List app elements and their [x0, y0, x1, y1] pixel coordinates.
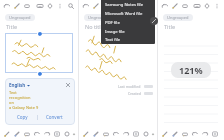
- button[interactable]: Select: [53, 130, 61, 138]
- button[interactable]: Tag: [125, 2, 133, 10]
- button[interactable]: Undo: [191, 130, 199, 138]
- button[interactable]: PDF file: [101, 18, 155, 27]
- button[interactable]: Scroll handle: [150, 17, 158, 25]
- button[interactable]: Ungrouped: [5, 14, 35, 21]
- staticText: Ungrouped: [167, 15, 189, 20]
- button[interactable]: Pen: [92, 2, 100, 10]
- staticText: Convert: [46, 114, 63, 120]
- staticText: Text file: [105, 37, 121, 43]
- button[interactable]: More options: [135, 2, 143, 10]
- staticText: No title: [85, 23, 104, 30]
- button[interactable]: Eraser: [23, 2, 31, 10]
- button[interactable]: Tag: [203, 2, 211, 10]
- button[interactable]: Undo: [3, 2, 11, 10]
- button[interactable]: Color: [73, 130, 75, 138]
- staticText: Title: [6, 23, 17, 30]
- button[interactable]: Close: [65, 82, 71, 88]
- staticText: on: [9, 100, 14, 105]
- button[interactable]: Select: [132, 130, 140, 138]
- button[interactable]: More options: [213, 2, 221, 10]
- button[interactable]: Redo: [122, 130, 130, 138]
- button[interactable]: Redo: [43, 130, 51, 138]
- staticText: Ungrouped: [9, 15, 31, 20]
- button[interactable]: English: [9, 82, 26, 88]
- button[interactable]: Edit: [145, 16, 154, 25]
- button[interactable]: Color: [152, 130, 154, 138]
- staticText: Copy: [17, 114, 28, 120]
- staticText: Created: [128, 91, 141, 96]
- button[interactable]: [5, 33, 73, 73]
- button[interactable]: Pen: [3, 130, 11, 138]
- button[interactable]: Ungrouped: [163, 14, 193, 21]
- button[interactable]: More options: [56, 2, 64, 10]
- button[interactable]: Copy: [14, 113, 31, 121]
- staticText: Samsung Notes file (.SDOC): [105, 2, 155, 8]
- button[interactable]: Highlighter: [171, 130, 179, 138]
- button[interactable]: Pen: [171, 2, 179, 10]
- staticText: English: [9, 82, 26, 88]
- button[interactable]: Select: [211, 130, 219, 138]
- staticText: a Galaxy Note 9: [9, 105, 39, 110]
- button[interactable]: Image file: [101, 27, 155, 36]
- button[interactable]: Eraser: [102, 130, 110, 138]
- button[interactable]: Pen: [82, 130, 90, 138]
- button[interactable]: Keyboard: [115, 2, 123, 10]
- staticText: recognition: [9, 95, 31, 100]
- button[interactable]: Eraser: [181, 2, 189, 10]
- button[interactable]: Eraser: [102, 2, 110, 10]
- button[interactable]: Undo: [82, 2, 90, 10]
- button[interactable]: Search: [67, 2, 75, 10]
- button[interactable]: Undo: [33, 130, 41, 138]
- staticText: Title: [164, 23, 175, 30]
- button[interactable]: Tag: [46, 2, 54, 10]
- staticText: PDF file: [105, 20, 120, 26]
- button[interactable]: Highlighter: [92, 130, 100, 138]
- staticText: Image file: [105, 29, 125, 35]
- button[interactable]: Convert: [43, 113, 66, 121]
- button[interactable]: Undo: [161, 2, 169, 10]
- button[interactable]: Pen: [13, 2, 21, 10]
- button[interactable]: Eraser: [181, 130, 189, 138]
- staticText: Ungrouped: [88, 15, 110, 20]
- button[interactable]: Shape: [63, 130, 71, 138]
- button[interactable]: Pen: [161, 130, 169, 138]
- button[interactable]: 121%: [171, 62, 211, 78]
- staticText: 121%: [179, 64, 203, 76]
- button[interactable]: Undo: [112, 130, 120, 138]
- button[interactable]: Ungrouped: [84, 14, 114, 21]
- staticText: Microsoft Word file: [105, 11, 143, 17]
- button[interactable]: Redo: [201, 130, 209, 138]
- button[interactable]: Eraser: [23, 130, 31, 138]
- button[interactable]: Keyboard: [193, 2, 201, 10]
- staticText: Last modified: [118, 84, 141, 89]
- button[interactable]: Microsoft Word file: [101, 9, 155, 18]
- button[interactable]: Text file: [101, 36, 155, 43]
- button[interactable]: Shape: [142, 130, 150, 138]
- button[interactable]: Keyboard: [36, 2, 44, 10]
- button[interactable]: Highlighter: [13, 130, 21, 138]
- staticText: Text: [9, 90, 17, 95]
- button[interactable]: Samsung Notes file (.SDOC): [101, 0, 155, 9]
